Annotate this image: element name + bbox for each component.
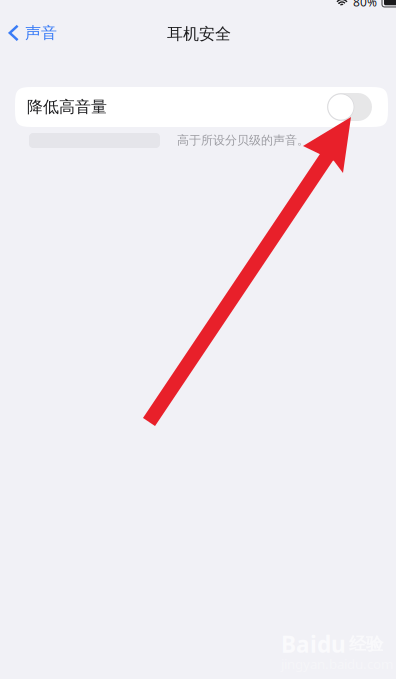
- button[interactable]: 降低高音量: [327, 93, 372, 121]
- staticText: 80%: [353, 0, 377, 10]
- staticText: 高于所设分贝级的声音。: [177, 133, 309, 148]
- button[interactable]: 声音: [0, 17, 67, 49]
- staticText: 声音: [25, 23, 57, 43]
- staticText: 降低高音量: [27, 97, 107, 117]
- staticText: Baidu: [281, 629, 346, 659]
- staticText: 经验: [349, 633, 383, 655]
- staticText: 耳机安全: [167, 24, 231, 44]
